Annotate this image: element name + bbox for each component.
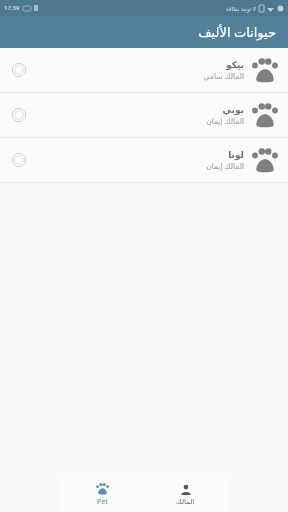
staticText: Pet bbox=[97, 497, 108, 507]
button[interactable]: المالك bbox=[144, 478, 227, 512]
other: Options bbox=[8, 59, 30, 81]
button[interactable]: Options bbox=[0, 93, 288, 137]
button[interactable]: Pet bbox=[61, 478, 144, 512]
staticText: لا توجد بطاقة bbox=[226, 5, 256, 12]
other: Options bbox=[8, 104, 30, 126]
staticText: المالك سامي bbox=[203, 71, 244, 81]
staticText: بيكو bbox=[226, 60, 244, 70]
staticText: المالك bbox=[176, 498, 195, 506]
other: Options bbox=[8, 149, 30, 171]
staticText: حيوانات الأليف bbox=[198, 23, 276, 41]
staticText: المالك إيمان bbox=[206, 116, 244, 126]
staticText: المالك إيمان bbox=[206, 161, 244, 171]
button[interactable]: Options bbox=[0, 138, 288, 182]
button[interactable]: Options bbox=[0, 48, 288, 92]
staticText: لونا bbox=[228, 150, 244, 160]
staticText: 17:39 bbox=[4, 4, 20, 12]
staticText: بوبي bbox=[222, 105, 244, 115]
